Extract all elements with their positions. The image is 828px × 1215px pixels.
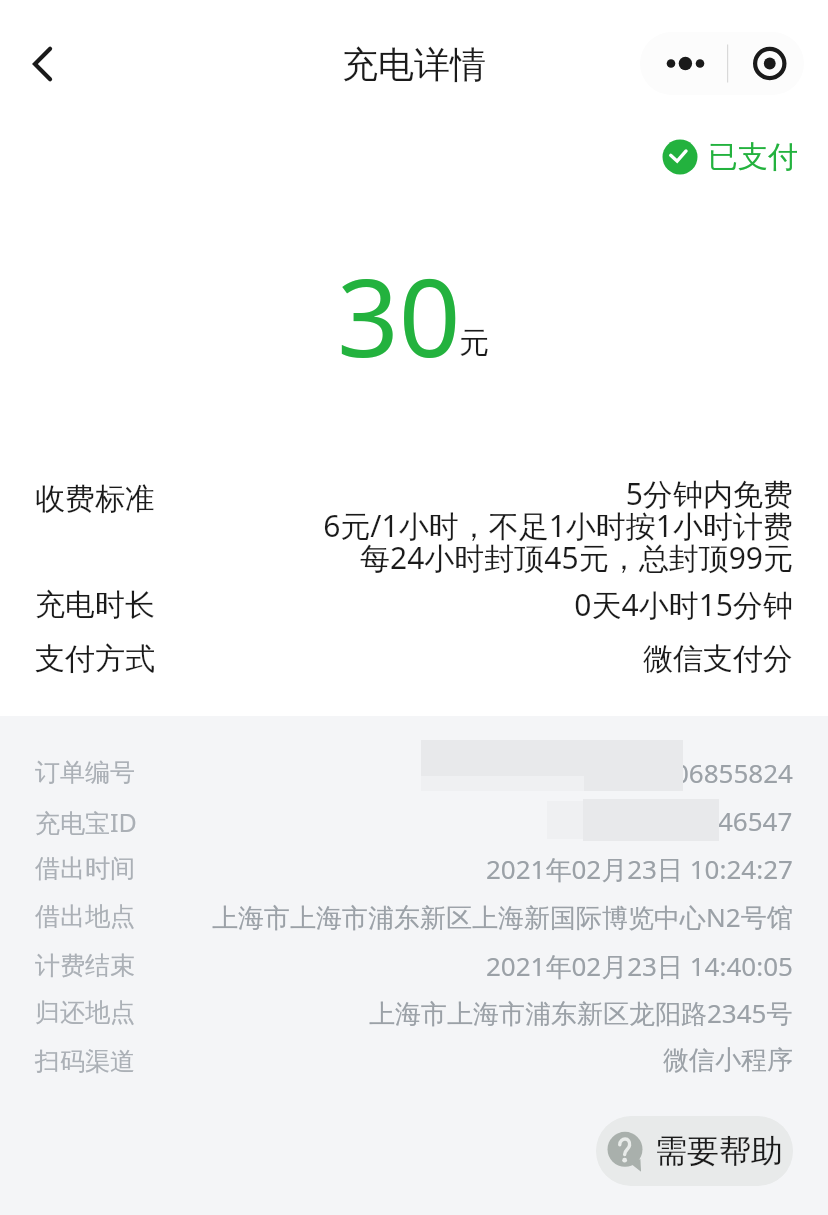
button[interactable]: 已支付 xyxy=(661,138,798,176)
staticText: 06855824 xyxy=(674,755,793,790)
staticText: 借出地点 xyxy=(35,901,135,932)
staticText: 30 xyxy=(337,242,461,389)
button[interactable]: 需要帮助 xyxy=(596,1116,793,1186)
staticText: 借出时间 xyxy=(35,853,135,884)
button[interactable]: Back xyxy=(6,28,78,100)
staticText: 计费结束 xyxy=(35,950,135,981)
button[interactable]: More options xyxy=(640,32,727,95)
staticText: 每24小时封顶45元，总封顶99元 xyxy=(360,537,793,578)
staticText: 2021年02月23日 14:40:05 xyxy=(486,948,793,984)
staticText: 扫码渠道 xyxy=(35,1046,135,1077)
staticText: 2021年02月23日 10:24:27 xyxy=(486,851,793,887)
staticText: 支付方式 xyxy=(35,640,155,678)
staticText: 充电时长 xyxy=(35,586,155,624)
button[interactable]: Close mini program xyxy=(727,32,804,95)
staticText: 微信支付分 xyxy=(643,640,793,678)
staticText: 需要帮助 xyxy=(655,1131,783,1171)
staticText: 6元/1小时，不足1小时按1小时计费 xyxy=(323,505,793,546)
staticText: 0天4小时15分钟 xyxy=(574,584,793,625)
staticText: 5分钟内免费 xyxy=(625,473,793,514)
staticText: 归还地点 xyxy=(35,997,135,1028)
staticText: 收费标准 xyxy=(35,480,155,518)
staticText: 充电宝ID xyxy=(35,805,137,839)
staticText: 元 xyxy=(459,324,489,362)
staticText: 上海市上海市浦东新区上海新国际博览中心N2号馆 xyxy=(212,899,793,935)
staticText: 上海市上海市浦东新区龙阳路2345号 xyxy=(369,995,793,1031)
staticText: 充电详情 xyxy=(342,42,486,87)
staticText: 46547 xyxy=(718,803,793,838)
staticText: 已支付 xyxy=(708,138,798,176)
staticText: 订单编号 xyxy=(35,757,135,788)
staticText: 微信小程序 xyxy=(663,1044,793,1077)
